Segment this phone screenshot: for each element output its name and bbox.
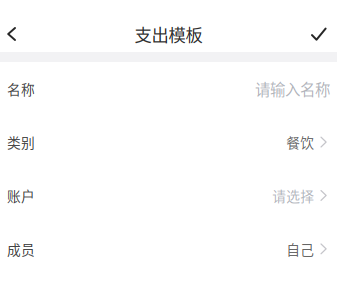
button[interactable]: 成员 — [0, 222, 337, 276]
staticText: 类别 — [7, 132, 35, 152]
staticText: 请选择 — [272, 186, 314, 205]
staticText: 支出模板 — [134, 21, 202, 47]
staticText: 餐饮 — [286, 132, 314, 152]
button[interactable]: 名称 — [0, 62, 337, 115]
button[interactable]: 账户 — [0, 169, 337, 222]
button[interactable]: Back — [0, 16, 28, 52]
staticText: 账户 — [7, 186, 35, 205]
button[interactable]: Save — [299, 16, 337, 51]
staticText: 成员 — [7, 239, 35, 259]
button[interactable]: 类别 — [0, 115, 337, 169]
staticText: 请输入名称 — [255, 77, 330, 100]
staticText: 名称 — [7, 79, 35, 99]
staticText: 自己 — [286, 239, 314, 259]
